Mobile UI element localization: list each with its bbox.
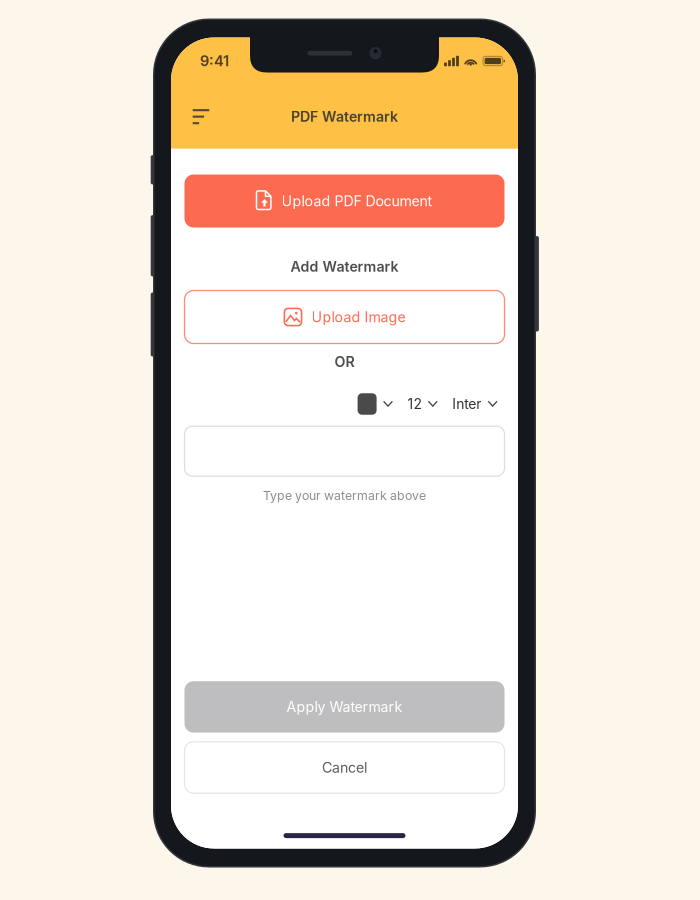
staticText: Inter [452, 396, 481, 412]
button[interactable]: Cancel [184, 742, 504, 793]
staticText: Add Watermark [290, 258, 398, 275]
staticText: Type your watermark above [263, 488, 426, 503]
button[interactable]: Watermark colour [358, 389, 392, 419]
staticText: Cancel [322, 759, 367, 776]
staticText: PDF Watermark [291, 108, 398, 125]
staticText: Upload PDF Document [281, 192, 432, 209]
button[interactable]: 12 [407, 389, 437, 419]
staticText: 9:41 [200, 52, 229, 70]
button[interactable]: Apply Watermark [184, 681, 504, 733]
staticText: 12 [407, 396, 421, 412]
staticText: Apply Watermark [286, 698, 402, 715]
button[interactable]: Upload Image [184, 290, 504, 343]
button[interactable]: Menu [179, 95, 223, 139]
staticText: Upload Image [311, 308, 405, 325]
button[interactable]: Inter [452, 389, 497, 419]
button[interactable]: Upload PDF Document [184, 174, 504, 227]
staticText: OR [334, 353, 354, 370]
